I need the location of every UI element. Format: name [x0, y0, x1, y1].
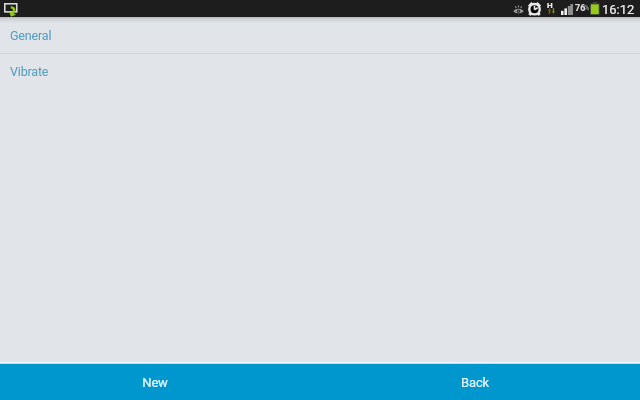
button[interactable]: General [0, 17, 640, 53]
staticText: General [10, 28, 52, 43]
staticText: 16:12 [602, 2, 635, 17]
button[interactable]: Back [320, 364, 640, 400]
staticText: % [584, 4, 590, 12]
staticText: New [142, 375, 168, 390]
staticText: Back [461, 375, 489, 390]
button[interactable]: New [0, 364, 320, 400]
button[interactable]: Vibrate [0, 54, 640, 90]
staticText: 76 [575, 3, 586, 14]
staticText: Vibrate [10, 64, 49, 79]
other: USB connected [4, 3, 17, 16]
staticText: H [547, 1, 553, 10]
